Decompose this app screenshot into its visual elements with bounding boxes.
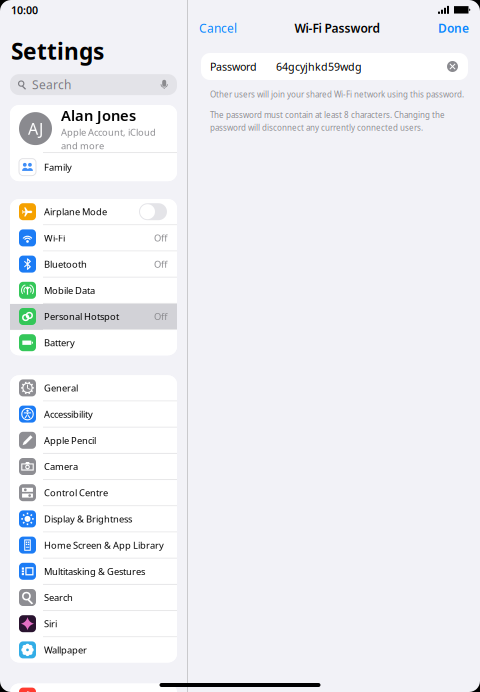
staticText: Accessibility: [44, 408, 93, 420]
staticText: Search: [32, 77, 71, 92]
staticText: Siri: [44, 617, 57, 630]
button[interactable]: AJ: [10, 105, 177, 152]
staticText: Mobile Data: [44, 284, 95, 296]
staticText: Other users will join your shared Wi-Fi …: [210, 89, 464, 100]
staticText: Bluetooth: [44, 258, 87, 270]
staticText: 64gcyjhkd59wdg: [276, 59, 362, 74]
button[interactable]: Multitasking & Gestures: [10, 559, 177, 585]
button[interactable]: Done: [438, 20, 469, 36]
staticText: and more: [61, 139, 104, 152]
staticText: Apple Pencil: [44, 434, 96, 446]
staticText: Cancel: [199, 20, 237, 36]
button[interactable]: Mobile Data: [10, 278, 177, 304]
button[interactable]: Wi-Fi: [10, 225, 177, 251]
button[interactable]: Siri: [10, 611, 177, 637]
button[interactable]: Apple Pencil: [10, 428, 177, 454]
staticText: Wi-Fi: [44, 232, 65, 244]
staticText: Home Screen & App Library: [44, 539, 164, 551]
staticText: Off: [154, 310, 167, 323]
button[interactable]: Notifications: [10, 683, 177, 692]
staticText: Personal Hotspot: [44, 310, 119, 323]
button[interactable]: Cancel: [199, 20, 237, 36]
staticText: AJ: [28, 118, 43, 139]
staticText: General: [44, 382, 78, 394]
button[interactable]: Bluetooth: [10, 251, 177, 278]
button[interactable]: General: [10, 375, 177, 401]
staticText: Family: [44, 161, 72, 173]
staticText: Search: [44, 591, 73, 604]
staticText: Done: [438, 20, 469, 36]
staticText: Alan Jones: [61, 105, 136, 125]
staticText: Wallpaper: [44, 644, 87, 656]
staticText: 10:00: [11, 3, 38, 17]
button[interactable]: Airplane Mode: [10, 199, 177, 225]
button[interactable]: Display & Brightness: [10, 506, 177, 532]
staticText: Camera: [44, 460, 78, 473]
button[interactable]: Family: [10, 153, 177, 181]
button[interactable]: Wallpaper: [10, 637, 177, 662]
staticText: Display & Brightness: [44, 513, 132, 525]
staticText: Battery: [44, 336, 75, 349]
staticText: password will disconnect any currently c…: [210, 122, 423, 133]
button[interactable]: Camera: [10, 454, 177, 480]
button[interactable]: Control Centre: [10, 480, 177, 506]
staticText: Apple Account, iCloud: [61, 126, 156, 138]
staticText: The password must contain at least 8 cha…: [210, 110, 445, 120]
button[interactable]: Search: [0, 74, 187, 95]
button[interactable]: Search: [10, 585, 177, 611]
button[interactable]: Battery: [10, 330, 177, 355]
staticText: Settings: [11, 36, 104, 66]
staticText: Wi-Fi Password: [294, 20, 380, 36]
staticText: Multitasking & Gestures: [44, 565, 145, 577]
button[interactable]: Clear text: [446, 60, 459, 73]
staticText: Off: [154, 232, 167, 244]
button[interactable]: Personal Hotspot: [10, 304, 177, 330]
button[interactable]: Home Screen & App Library: [10, 532, 177, 559]
staticText: Control Centre: [44, 486, 108, 499]
staticText: Airplane Mode: [44, 205, 107, 218]
staticText: Off: [154, 258, 167, 270]
staticText: Password: [210, 59, 257, 74]
button[interactable]: Accessibility: [10, 401, 177, 428]
